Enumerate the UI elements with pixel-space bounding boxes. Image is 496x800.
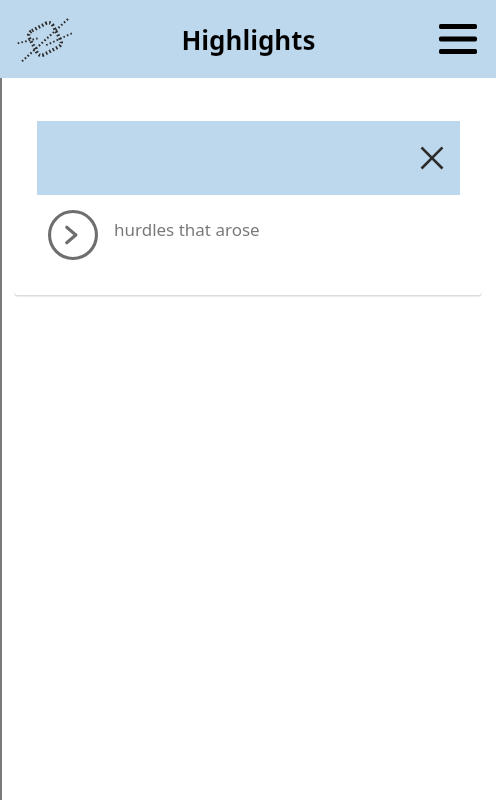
staticText: Highlights bbox=[181, 22, 316, 57]
button[interactable]: Expand bbox=[14, 207, 482, 263]
other: Expand bbox=[48, 210, 98, 260]
button[interactable]: Close bbox=[408, 134, 456, 182]
button[interactable]: Menu bbox=[434, 15, 482, 63]
button[interactable]: Logo bbox=[14, 8, 76, 70]
staticText: hurdles that arose bbox=[114, 218, 260, 241]
